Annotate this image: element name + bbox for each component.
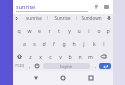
button[interactable]: c: [45, 50, 55, 62]
button[interactable]: More options: [102, 3, 110, 11]
button[interactable]: sunrise: [16, 3, 88, 12]
button[interactable]: y: [64, 24, 74, 36]
button[interactable]: m: [85, 50, 95, 62]
button[interactable]: t: [54, 24, 64, 36]
button[interactable]: g: [59, 37, 69, 49]
button[interactable]: Voice input: [105, 14, 113, 22]
button[interactable]: sunrise: [20, 14, 47, 22]
staticText: t: [58, 27, 60, 34]
staticText: g: [62, 40, 66, 47]
button[interactable]: o: [94, 24, 104, 36]
staticText: Sunrise: [54, 15, 71, 21]
button[interactable]: h: [69, 37, 79, 49]
staticText: sunrise: [26, 15, 42, 21]
button[interactable]: Clear: [92, 3, 100, 11]
button[interactable]: Sunrise: [48, 14, 76, 22]
staticText: x: [39, 53, 42, 60]
button[interactable]: Home: [58, 73, 68, 83]
button[interactable]: f: [49, 37, 59, 49]
staticText: m: [88, 53, 93, 60]
button[interactable]: j: [79, 37, 89, 49]
staticText: s: [33, 40, 36, 47]
button[interactable]: i: [84, 24, 94, 36]
button[interactable]: d: [39, 37, 49, 49]
staticText: b: [68, 53, 72, 60]
staticText: o: [97, 27, 101, 34]
button[interactable]: e: [34, 24, 44, 36]
button[interactable]: n: [75, 50, 85, 62]
staticText: .: [95, 63, 97, 69]
staticText: English: [60, 64, 73, 69]
button[interactable]: Sundown: [77, 14, 105, 22]
staticText: h: [72, 40, 76, 47]
button[interactable]: Back: [31, 73, 41, 83]
staticText: j: [83, 40, 85, 47]
button[interactable]: w: [24, 24, 34, 36]
button[interactable]: ?123: [14, 63, 26, 69]
button[interactable]: Emoji: [33, 63, 41, 69]
staticText: e: [38, 27, 41, 34]
button[interactable]: Period: [92, 63, 99, 69]
staticText: c: [49, 53, 52, 60]
staticText: z: [29, 53, 32, 60]
button[interactable]: Shift: [14, 50, 25, 62]
staticText: r: [48, 27, 51, 34]
staticText: ?123: [15, 63, 25, 69]
staticText: a: [23, 40, 26, 47]
button[interactable]: b: [65, 50, 75, 62]
staticText: v: [59, 53, 62, 60]
button[interactable]: Comma: [26, 63, 33, 69]
button[interactable]: u: [74, 24, 84, 36]
button[interactable]: Enter: [99, 63, 111, 69]
button[interactable]: Backspace: [95, 50, 112, 62]
staticText: w: [27, 27, 32, 34]
button[interactable]: v: [55, 50, 65, 62]
staticText: Sundown: [81, 15, 102, 21]
staticText: n: [78, 53, 82, 60]
staticText: q: [17, 27, 21, 34]
button[interactable]: Recent apps: [86, 73, 96, 83]
staticText: sunrise: [16, 3, 36, 10]
button[interactable]: r: [44, 24, 54, 36]
staticText: u: [77, 27, 81, 34]
staticText: l: [103, 40, 105, 47]
button[interactable]: p: [104, 24, 112, 36]
button[interactable]: q: [14, 24, 24, 36]
button[interactable]: x: [35, 50, 45, 62]
button[interactable]: a: [19, 37, 29, 49]
staticText: i: [88, 27, 90, 34]
button[interactable]: s: [29, 37, 39, 49]
button[interactable]: z: [25, 50, 35, 62]
staticText: p: [106, 27, 110, 34]
staticText: d: [42, 40, 46, 47]
staticText: f: [53, 40, 55, 47]
staticText: k: [93, 40, 96, 47]
button[interactable]: Space: [43, 63, 90, 69]
button[interactable]: l: [99, 37, 109, 49]
staticText: y: [68, 27, 71, 34]
staticText: ,: [29, 63, 31, 69]
button[interactable]: Expand suggestions: [13, 14, 20, 22]
button[interactable]: k: [89, 37, 99, 49]
